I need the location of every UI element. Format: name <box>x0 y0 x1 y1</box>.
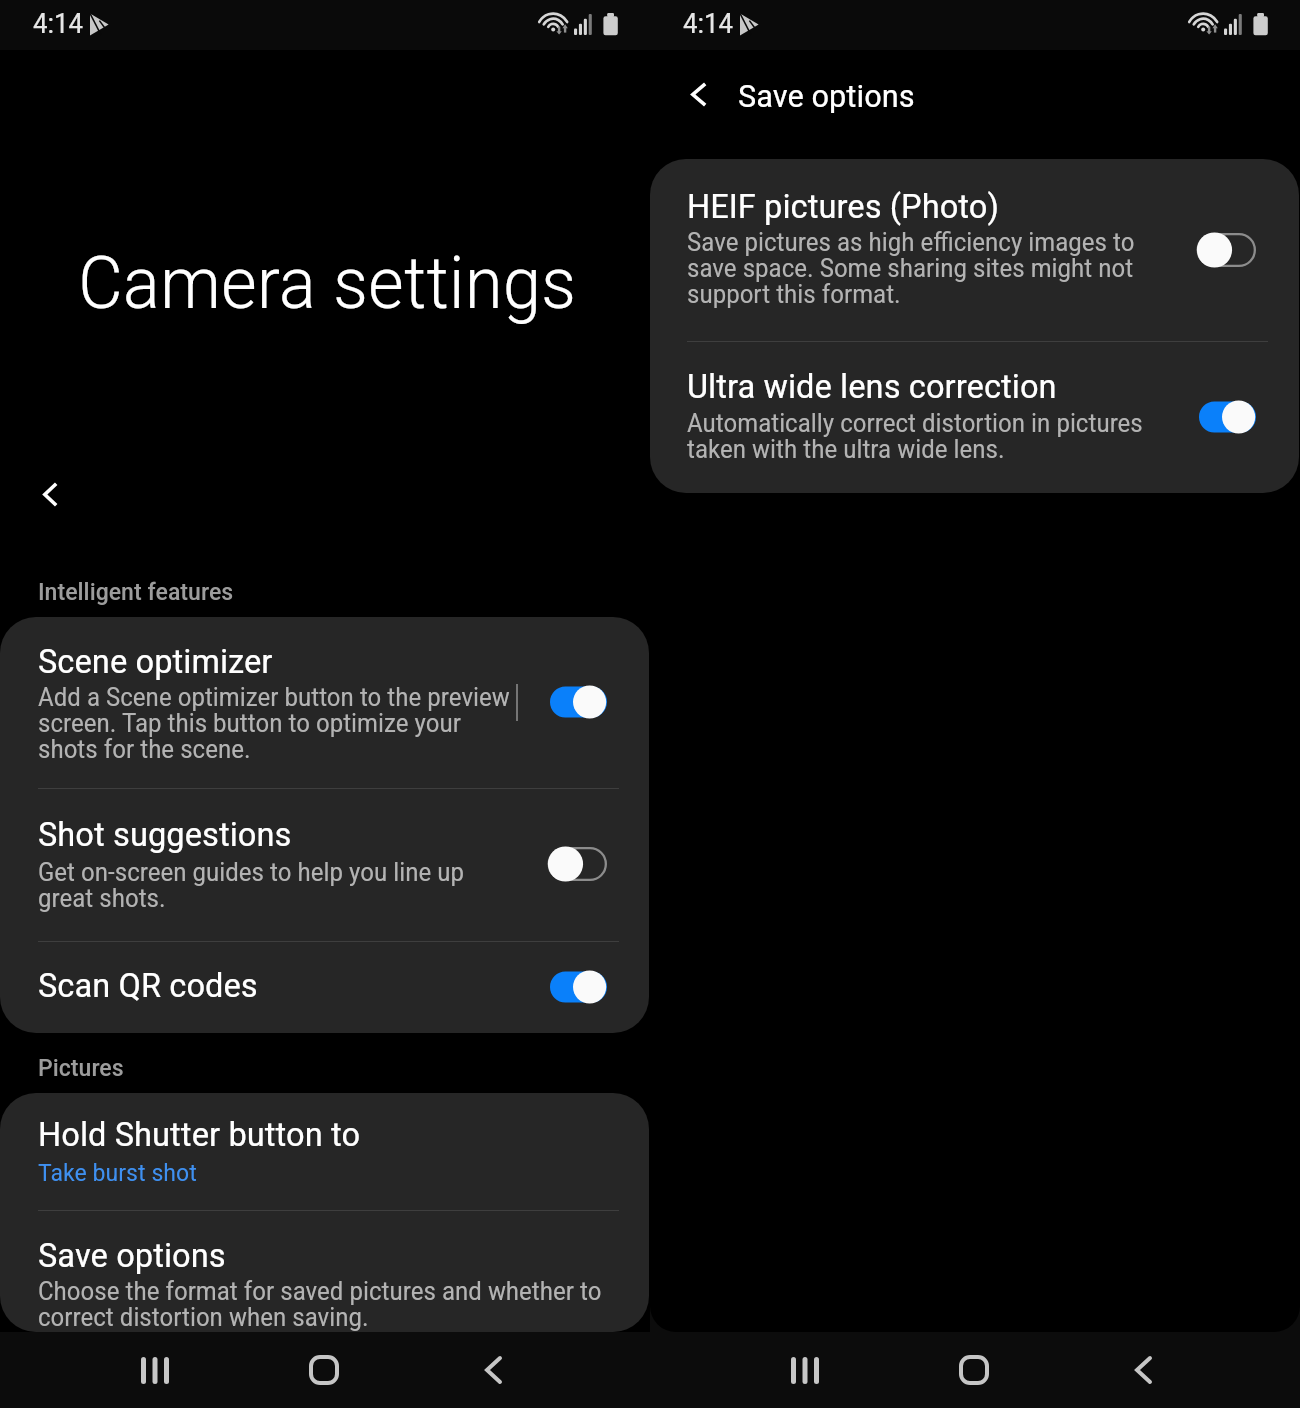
staticText: Ultra wide lens correction <box>687 366 1057 406</box>
staticText: Hold Shutter button to <box>38 1114 361 1154</box>
button[interactable]: Ultra wide lens correction, on <box>1196 399 1256 435</box>
staticText: 4:14 <box>33 9 84 39</box>
staticText: Save options <box>38 1235 226 1275</box>
staticText: Automatically correct distortion in pict… <box>687 411 1167 463</box>
button[interactable]: Recent apps <box>755 1338 855 1402</box>
staticText: Save options <box>738 77 915 115</box>
button[interactable]: Back <box>670 65 727 124</box>
staticText: Choose the format for saved pictures and… <box>38 1279 620 1331</box>
button[interactable]: Scan QR codes, on <box>547 969 607 1005</box>
button[interactable]: Back <box>22 466 79 523</box>
button[interactable]: Save options <box>732 65 992 125</box>
staticText: Intelligent features <box>38 578 234 606</box>
staticText: Scan QR codes <box>38 965 258 1005</box>
staticText: Scene optimizer <box>38 641 273 681</box>
staticText: Save pictures as high efficiency images … <box>687 230 1167 308</box>
button[interactable]: Shot suggestions, off <box>547 846 607 882</box>
button[interactable]: HEIF pictures (Photo) <box>650 159 1298 340</box>
button[interactable]: Hold Shutter button to <box>0 1093 649 1210</box>
staticText: Get on-screen guides to help you line up… <box>38 860 518 912</box>
button[interactable]: Scene optimizer <box>0 617 649 787</box>
button[interactable]: HEIF pictures, off <box>1196 232 1256 268</box>
staticText: Camera settings <box>78 241 577 325</box>
staticText: Pictures <box>38 1054 124 1082</box>
staticText: Take burst shot <box>38 1160 197 1186</box>
button[interactable]: Home <box>274 1338 374 1402</box>
button[interactable]: Save options <box>0 1210 649 1332</box>
button[interactable]: Back <box>443 1338 543 1402</box>
button[interactable]: Recent apps <box>105 1338 205 1402</box>
staticText: Add a Scene optimizer button to the prev… <box>38 685 518 763</box>
button[interactable]: Back <box>1093 1338 1193 1402</box>
button[interactable]: Home <box>924 1338 1024 1402</box>
button[interactable]: Scan QR codes <box>0 941 649 1033</box>
button[interactable]: Scene optimizer, on <box>547 684 607 720</box>
staticText: Shot suggestions <box>38 814 292 854</box>
staticText: 4:14 <box>683 9 734 39</box>
button[interactable]: Ultra wide lens correction <box>650 341 1298 493</box>
staticText: HEIF pictures (Photo) <box>687 186 999 226</box>
button[interactable]: Shot suggestions <box>0 788 649 941</box>
